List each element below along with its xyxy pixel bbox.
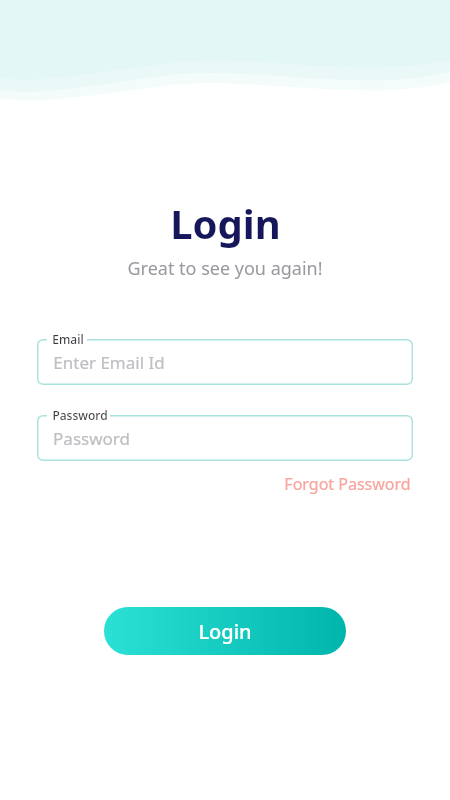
- staticText: Enter Email Id: [53, 351, 165, 374]
- staticText: Email: [52, 331, 84, 347]
- staticText: Login: [198, 618, 252, 645]
- button[interactable]: Email: [37, 331, 413, 385]
- staticText: Password: [52, 407, 108, 423]
- button[interactable]: Forgot Password: [282, 469, 413, 499]
- staticText: Login: [170, 196, 281, 250]
- button[interactable]: Password: [37, 407, 413, 461]
- staticText: Forgot Password: [284, 473, 411, 495]
- staticText: Password: [53, 427, 130, 450]
- staticText: Great to see you again!: [127, 256, 323, 281]
- button[interactable]: Login: [104, 607, 346, 655]
